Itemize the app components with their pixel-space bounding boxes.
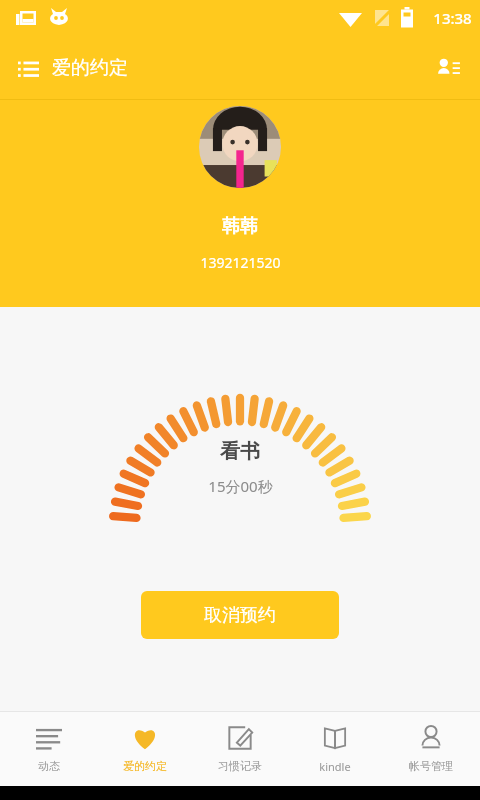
button[interactable]: Contacts [430, 49, 468, 87]
button[interactable]: 习惯记录 [194, 712, 286, 786]
staticText: 1392121520 [200, 253, 281, 272]
staticText: 看书 [220, 439, 260, 464]
button[interactable]: kindle [289, 712, 381, 786]
staticText: kindle [319, 759, 351, 774]
button[interactable]: Profile photo [199, 106, 281, 188]
staticText: 韩韩 [222, 215, 258, 238]
staticText: 13:38 [433, 8, 472, 28]
button[interactable]: 取消预约 [141, 591, 339, 639]
staticText: 动态 [38, 759, 60, 773]
staticText: 爱的约定 [123, 759, 167, 773]
staticText: 爱的约定 [52, 56, 128, 80]
button[interactable]: 帐号管理 [385, 712, 477, 786]
button[interactable]: 爱的约定 [99, 712, 191, 786]
staticText: 取消预约 [204, 604, 276, 627]
button[interactable]: 爱的约定 [14, 50, 132, 86]
staticText: 习惯记录 [218, 759, 262, 773]
button[interactable]: 动态 [3, 712, 95, 786]
staticText: 帐号管理 [409, 759, 453, 773]
staticText: 15分00秒 [208, 476, 273, 496]
